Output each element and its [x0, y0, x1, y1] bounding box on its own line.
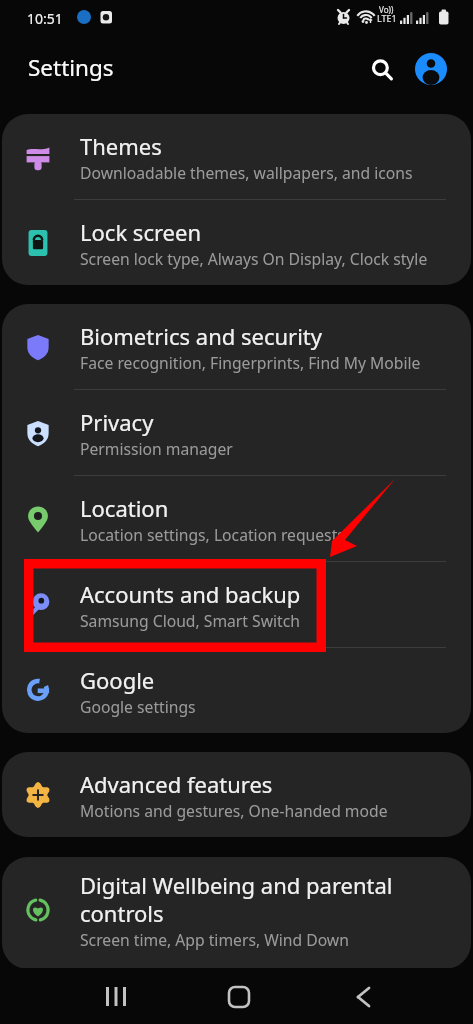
staticText: Face recognition, Fingerprints, Find My …: [80, 352, 421, 373]
staticText: Google: [80, 665, 155, 695]
button[interactable]: Location: [2, 476, 471, 561]
button[interactable]: Account: [415, 53, 447, 85]
button[interactable]: Digital Wellbeing and parental controls: [2, 857, 471, 969]
button[interactable]: Advanced features: [2, 752, 471, 837]
staticText: Screen lock type, Always On Display, Clo…: [80, 248, 428, 269]
staticText: Settings: [28, 52, 114, 83]
staticText: Location: [80, 493, 169, 523]
button[interactable]: Privacy: [2, 390, 471, 475]
staticText: Privacy: [80, 407, 154, 437]
staticText: Biometrics and security: [80, 321, 323, 351]
button[interactable]: Search: [360, 46, 402, 88]
staticText: Motions and gestures, One-handed mode: [80, 800, 388, 821]
staticText: Lock screen: [80, 217, 202, 247]
staticText: Google settings: [80, 696, 196, 717]
staticText: Themes: [80, 131, 162, 161]
staticText: Advanced features: [80, 769, 273, 799]
button[interactable]: Home: [210, 984, 266, 1024]
button[interactable]: Back: [335, 984, 391, 1024]
button[interactable]: Recent apps: [90, 984, 146, 1024]
button[interactable]: Accounts and backup: [2, 562, 471, 647]
button[interactable]: Lock screen: [2, 200, 471, 285]
staticText: LTE1: [377, 12, 397, 24]
staticText: Screen time, App timers, Wind Down: [80, 929, 349, 950]
staticText: Samsung Cloud, Smart Switch: [80, 610, 300, 631]
staticText: 10:51: [27, 9, 63, 28]
staticText: Accounts and backup: [80, 579, 301, 609]
button[interactable]: Themes: [2, 114, 471, 199]
staticText: Vo)): [379, 4, 394, 15]
staticText: Permission manager: [80, 438, 233, 459]
staticText: Downloadable themes, wallpapers, and ico…: [80, 162, 413, 183]
staticText: Digital Wellbeing and parental controls: [80, 870, 400, 928]
button[interactable]: Google: [2, 648, 471, 733]
staticText: Location settings, Location requests: [80, 524, 345, 545]
button[interactable]: Biometrics and security: [2, 304, 471, 389]
